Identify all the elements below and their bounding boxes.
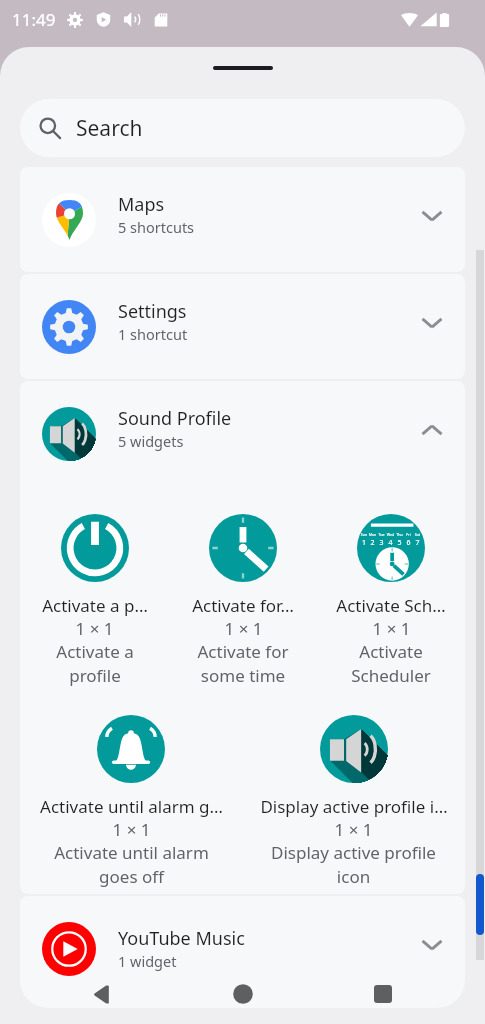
staticText: Activate for… bbox=[192, 594, 294, 617]
staticText: 1 × 1 bbox=[224, 617, 263, 640]
button[interactable]: Back bbox=[80, 972, 124, 1016]
staticText: Activate Scheduler bbox=[351, 640, 431, 687]
staticText: Activate for some time bbox=[197, 640, 289, 687]
staticText: Thu bbox=[395, 532, 404, 537]
staticText: Tue bbox=[377, 532, 386, 537]
staticText: 1 widget bbox=[118, 951, 177, 971]
staticText: 5 widgets bbox=[118, 431, 184, 451]
staticText: 5 bbox=[395, 538, 404, 548]
staticText: YouTube Music bbox=[118, 926, 245, 951]
staticText: 2 bbox=[368, 538, 377, 548]
button[interactable]: Activate until alarm g… bbox=[20, 687, 242, 888]
staticText: 11:49 bbox=[12, 8, 56, 31]
button[interactable]: YouTube Music bbox=[20, 896, 465, 1008]
staticText: Search bbox=[76, 114, 143, 143]
button[interactable]: Search bbox=[20, 99, 465, 157]
staticText: Activate a p… bbox=[42, 594, 148, 617]
button[interactable]: Home bbox=[221, 972, 265, 1016]
button[interactable]: Sound Profile bbox=[20, 381, 465, 486]
staticText: Sound Profile bbox=[118, 406, 232, 431]
staticText: Mon bbox=[368, 532, 377, 537]
staticText: Sat bbox=[413, 532, 422, 537]
staticText: Activate until alarm goes off bbox=[54, 841, 209, 888]
staticText: 4 bbox=[386, 538, 395, 548]
staticText: Activate until alarm g… bbox=[40, 795, 223, 818]
button[interactable]: Activate for… bbox=[169, 486, 317, 687]
button[interactable]: Display active profile i… bbox=[242, 687, 465, 888]
button[interactable]: Activate a p… bbox=[20, 486, 169, 687]
button[interactable]: Recent apps bbox=[361, 972, 405, 1016]
staticText: 1 bbox=[360, 538, 368, 548]
button[interactable]: Maps bbox=[20, 167, 465, 272]
staticText: Fri bbox=[404, 532, 413, 537]
staticText: Display active profile icon bbox=[271, 841, 436, 888]
staticText: 6 bbox=[404, 538, 413, 548]
staticText: Wed bbox=[386, 532, 395, 537]
staticText: Activate Sch… bbox=[336, 594, 446, 617]
staticText: Sun bbox=[360, 532, 368, 537]
staticText: 7 bbox=[413, 538, 422, 548]
staticText: 1 × 1 bbox=[334, 818, 373, 841]
button[interactable]: Sun bbox=[317, 486, 465, 687]
staticText: 1 × 1 bbox=[75, 617, 114, 640]
staticText: 1 shortcut bbox=[118, 324, 188, 344]
staticText: Settings bbox=[118, 299, 187, 324]
button[interactable]: Settings bbox=[20, 274, 465, 379]
staticText: 1 × 1 bbox=[372, 617, 411, 640]
staticText: 3 bbox=[377, 538, 386, 548]
staticText: 1 × 1 bbox=[112, 818, 151, 841]
staticText: Display active profile i… bbox=[260, 795, 448, 818]
staticText: 5 shortcuts bbox=[118, 217, 195, 237]
staticText: Activate a profile bbox=[56, 640, 134, 687]
staticText: Maps bbox=[118, 192, 165, 217]
